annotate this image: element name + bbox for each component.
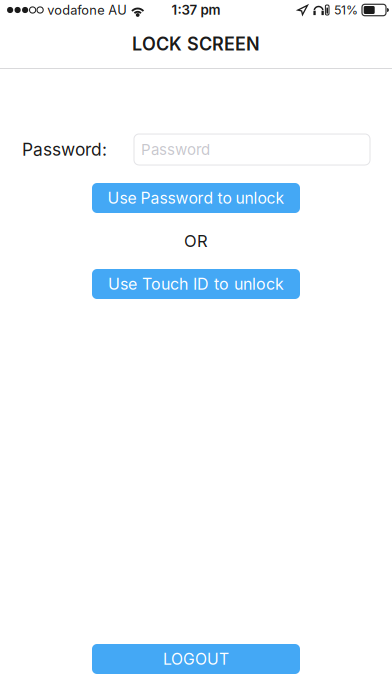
button[interactable]: LOGOUT [92,644,300,674]
staticText: Password [141,140,210,159]
staticText: 1:37 pm [171,2,220,18]
staticText: vodafone AU [47,2,127,18]
staticText: Use Touch ID to unlock [108,274,284,294]
staticText: 51% [334,3,358,17]
button[interactable]: Use Touch ID to unlock [92,269,300,299]
staticText: OR [184,231,208,251]
staticText: Password: [22,139,107,160]
button[interactable]: Use Password to unlock [92,183,300,213]
staticText: LOCK SCREEN [132,33,260,55]
staticText: LOGOUT [163,649,229,668]
button[interactable]: Password [134,134,370,165]
staticText: Use Password to unlock [107,188,284,207]
